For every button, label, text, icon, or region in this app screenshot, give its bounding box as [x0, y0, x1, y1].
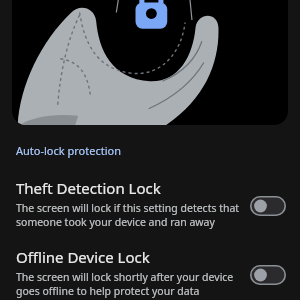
- staticText: Theft Detection Lock: [16, 178, 161, 198]
- button[interactable]: Offline Device Lock: [0, 245, 300, 300]
- staticText: Auto-lock protection: [16, 143, 121, 158]
- staticText: Offline Device Lock: [16, 247, 150, 267]
- button[interactable]: Theft Detection Lock: [0, 176, 300, 231]
- button[interactable]: Offline Device Lock toggle, off: [248, 263, 288, 287]
- staticText: The screen will lock if this setting det…: [16, 201, 240, 229]
- button[interactable]: Theft Detection Lock toggle, off: [248, 194, 288, 218]
- staticText: The screen will lock shortly after your …: [16, 270, 240, 298]
